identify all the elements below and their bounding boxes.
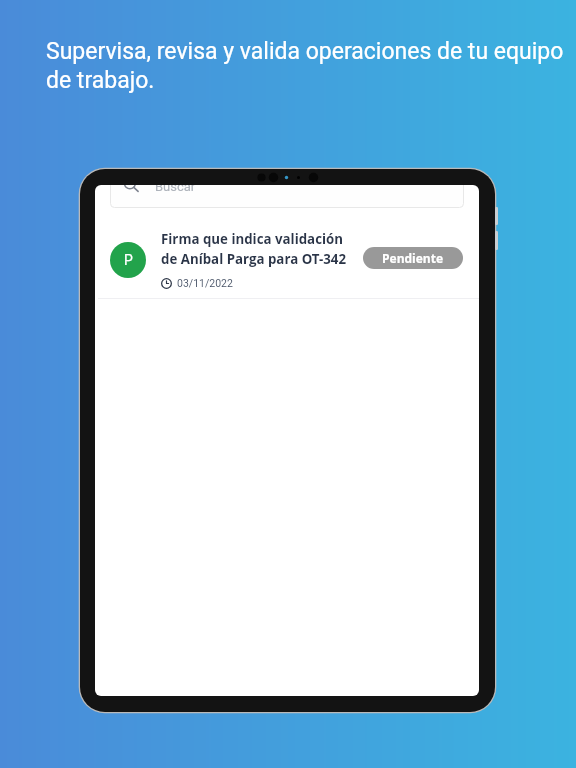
staticText: P <box>124 252 133 268</box>
staticText: Supervisa, revisa y valida operaciones d… <box>46 38 574 93</box>
staticText: Buscar <box>155 185 196 194</box>
button[interactable]: P <box>95 218 479 302</box>
staticText: Pendiente <box>382 250 444 266</box>
staticText: de Aníbal Parga para OT-342 <box>161 250 347 268</box>
staticText: 03/11/2022 <box>177 277 233 289</box>
other: Buscar <box>124 185 140 194</box>
button[interactable]: Buscar <box>110 185 464 208</box>
staticText: Firma que indica validación <box>161 230 344 248</box>
button[interactable]: Pendiente <box>363 247 463 269</box>
